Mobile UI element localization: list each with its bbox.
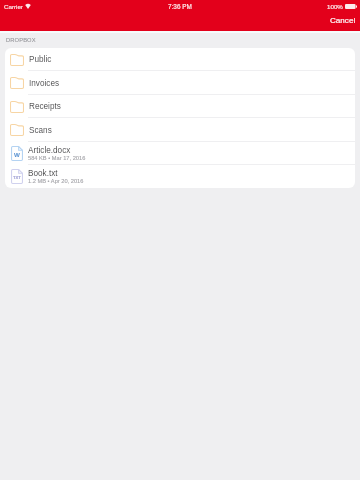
staticText: Public bbox=[29, 55, 52, 64]
button[interactable]: TXT bbox=[5, 165, 355, 188]
button[interactable]: Scans bbox=[5, 118, 355, 142]
button[interactable]: W bbox=[5, 142, 355, 165]
staticText: 100% bbox=[327, 3, 343, 10]
staticText: DROPBOX bbox=[6, 37, 36, 43]
button[interactable]: Receipts bbox=[5, 95, 355, 118]
staticText: Scans bbox=[29, 126, 52, 135]
staticText: Receipts bbox=[29, 102, 61, 111]
staticText: Article.docx bbox=[28, 146, 71, 155]
staticText: Invoices bbox=[29, 79, 60, 88]
staticText: 584 KB • Mar 17, 2016 bbox=[28, 155, 86, 161]
button[interactable]: Invoices bbox=[5, 71, 355, 95]
button[interactable]: Cancel bbox=[330, 16, 360, 31]
staticText: Carrier bbox=[4, 3, 23, 10]
staticText: TXT bbox=[13, 175, 21, 180]
staticText: Cancel bbox=[330, 16, 356, 25]
button[interactable]: Public bbox=[5, 48, 355, 71]
staticText: Book.txt bbox=[28, 169, 58, 178]
staticText: 1.2 MB • Apr 20, 2016 bbox=[28, 178, 84, 184]
staticText: 7:36 PM bbox=[168, 3, 192, 10]
staticText: W bbox=[14, 151, 20, 158]
